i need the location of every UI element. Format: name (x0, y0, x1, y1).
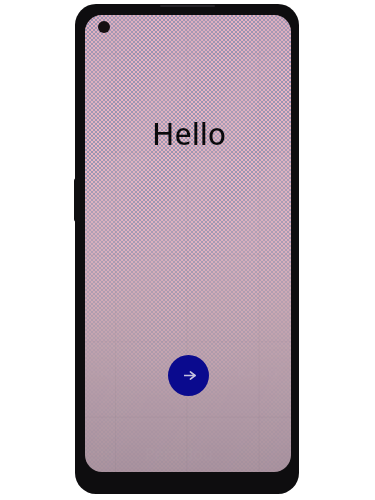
staticText: Hello (85, 443, 114, 465)
staticText: Kaixo (237, 361, 278, 383)
staticText: Pera dou (145, 443, 213, 465)
staticText: Hello (152, 113, 227, 154)
staticText: Hello (85, 361, 114, 383)
button[interactable]: Next greeting (168, 355, 209, 396)
